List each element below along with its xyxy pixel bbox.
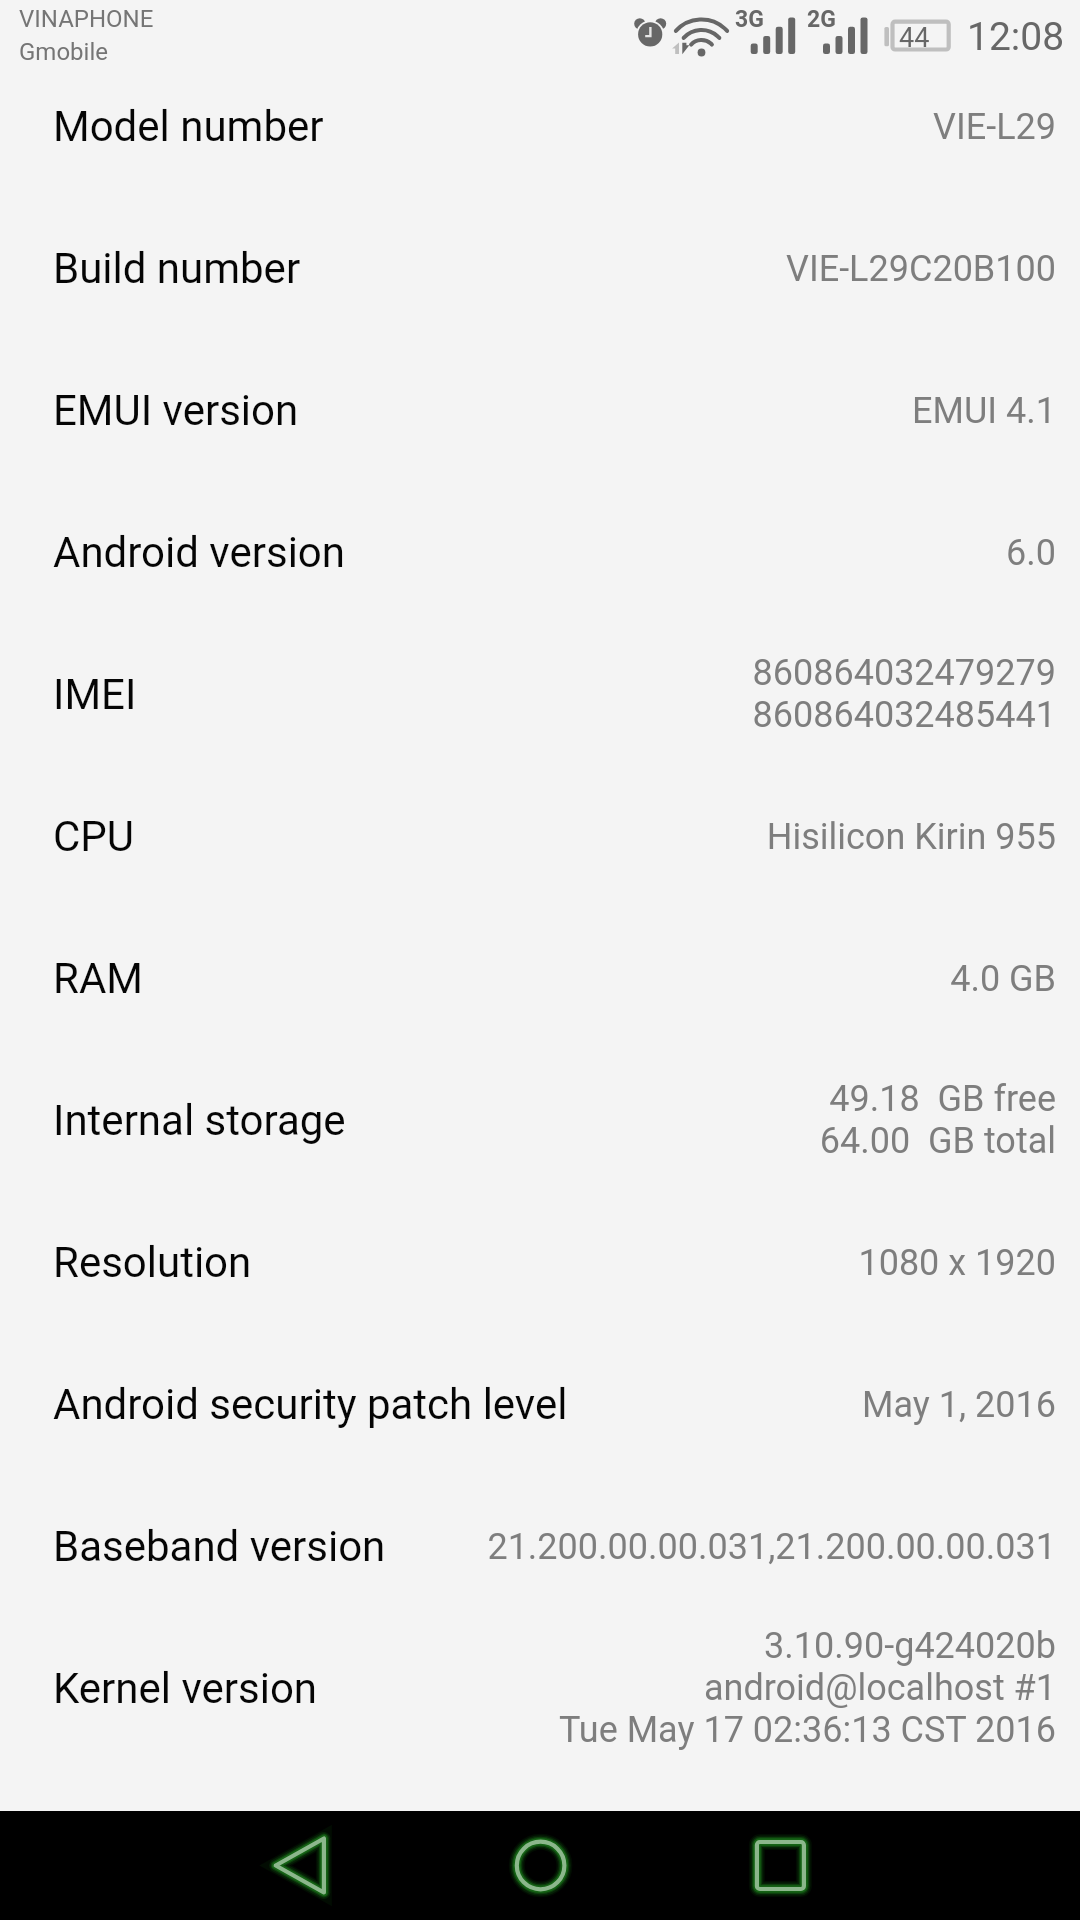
staticText: EMUI version (53, 386, 299, 435)
button[interactable]: IMEI (0, 623, 1080, 765)
button[interactable]: Recents (660, 1811, 900, 1920)
staticText: Baseband version (53, 1522, 386, 1571)
staticText: Android security patch level (53, 1380, 568, 1429)
button[interactable]: RAM (0, 907, 1080, 1049)
staticText: Build number (53, 244, 301, 293)
staticText: VIE-L29C20B100 (786, 248, 1056, 290)
staticText: 12:08 (967, 14, 1065, 60)
staticText: 6.0 (1006, 532, 1056, 574)
button[interactable]: Home (420, 1811, 660, 1920)
staticText: EMUI 4.1 (912, 390, 1056, 432)
staticText: Android version (53, 528, 345, 577)
button[interactable]: Baseband version (0, 1475, 1080, 1617)
button[interactable]: Model number (0, 55, 1080, 197)
staticText: Gmobile (19, 38, 108, 66)
button[interactable]: Build number (0, 197, 1080, 339)
staticText: Model number (53, 102, 324, 151)
staticText: android@localhost #1 (703, 1667, 1056, 1709)
button[interactable]: Kernel version (0, 1617, 1080, 1759)
button[interactable]: Android version (0, 481, 1080, 623)
staticText: 4.0 GB (950, 958, 1056, 1000)
staticText: 860864032485441 (752, 694, 1056, 736)
button[interactable]: Internal storage (0, 1049, 1080, 1191)
staticText: Hisilicon Kirin 955 (766, 816, 1056, 858)
staticText: VINAPHONE (19, 5, 154, 33)
staticText: Internal storage (53, 1096, 346, 1145)
staticText: CPU (53, 812, 135, 861)
button[interactable]: CPU (0, 765, 1080, 907)
button[interactable]: EMUI version (0, 339, 1080, 481)
staticText: IMEI (53, 670, 137, 719)
staticText: Tue May 17 02:36:13 CST 2016 (559, 1709, 1056, 1751)
staticText: RAM (53, 954, 143, 1003)
staticText: 44 (899, 22, 930, 54)
staticText: 21.200.00.00.031,21.200.00.00.031 (487, 1526, 1056, 1568)
staticText: 49.18 GB free (829, 1078, 1056, 1120)
staticText: 3.10.90-g424020b (764, 1625, 1056, 1667)
staticText: Resolution (53, 1238, 252, 1287)
button[interactable]: Back (180, 1811, 420, 1920)
staticText: 860864032479279 (752, 652, 1056, 694)
button[interactable]: Android security patch level (0, 1333, 1080, 1475)
staticText: 1080 x 1920 (858, 1242, 1056, 1284)
staticText: Kernel version (53, 1664, 318, 1713)
button[interactable]: Resolution (0, 1191, 1080, 1333)
staticText: 3G (735, 6, 764, 33)
staticText: VIE-L29 (933, 106, 1056, 148)
staticText: May 1, 2016 (862, 1384, 1056, 1426)
staticText: 2G (807, 6, 836, 33)
staticText: 64.00 GB total (819, 1120, 1056, 1162)
